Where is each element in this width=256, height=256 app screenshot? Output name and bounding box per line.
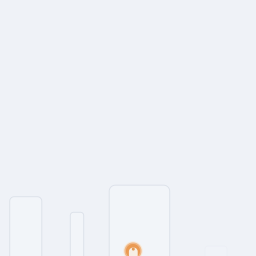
button[interactable]: Card 3 xyxy=(109,185,170,256)
button[interactable]: Card 2 xyxy=(70,212,84,256)
button[interactable]: Profile xyxy=(123,241,143,256)
